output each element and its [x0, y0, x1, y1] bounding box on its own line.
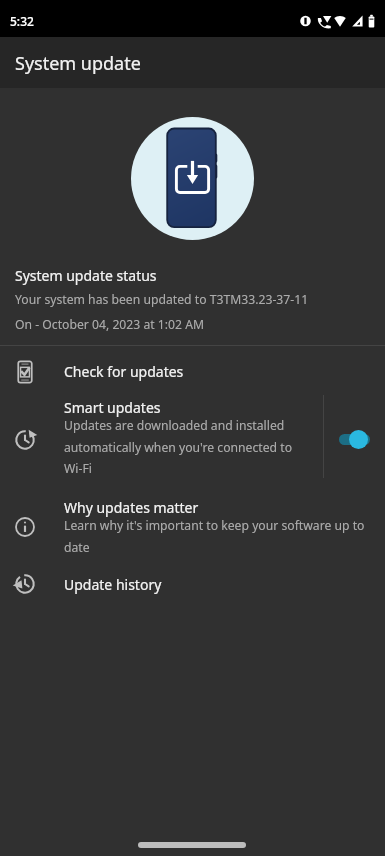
staticText: Smart updates [64, 398, 161, 417]
staticText: System update [15, 51, 141, 76]
staticText: System update status [15, 266, 157, 285]
button[interactable] [0, 392, 385, 488]
staticText: Updates are downloaded and installed aut… [64, 417, 304, 476]
button[interactable]: Check for updates [0, 346, 385, 396]
staticText: 5:32 [10, 13, 34, 29]
button[interactable]: Update history [0, 562, 385, 608]
button[interactable]: Smart updates toggle [324, 395, 385, 478]
staticText: On - October 04, 2023 at 1:02 AM [15, 316, 205, 333]
staticText: Update history [64, 575, 162, 594]
staticText: Check for updates [64, 362, 184, 381]
staticText: Your system has been updated to T3TM33.2… [15, 291, 309, 308]
staticText: Learn why it's important to keep your so… [64, 517, 376, 555]
staticText: Why updates matter [64, 498, 199, 517]
button[interactable] [0, 492, 385, 566]
